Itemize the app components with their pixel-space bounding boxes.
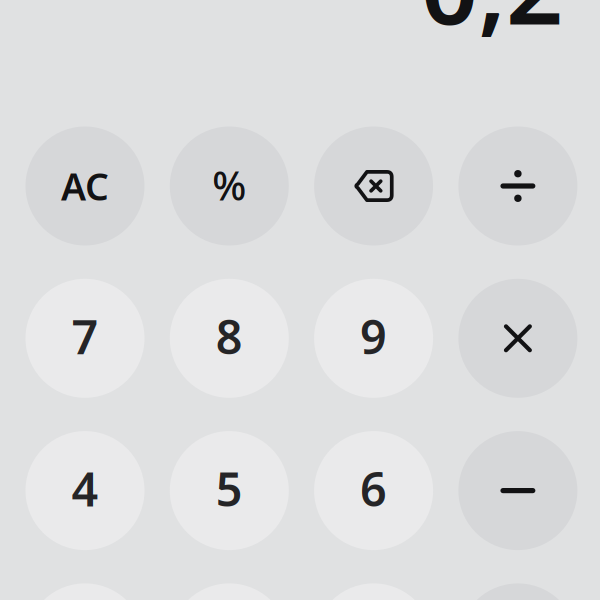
button[interactable]: Divide — [458, 126, 577, 245]
button[interactable]: Plus — [458, 583, 577, 600]
button[interactable]: 3 — [314, 583, 433, 600]
button[interactable]: Delete — [314, 126, 433, 245]
staticText: % — [212, 158, 246, 211]
button[interactable]: AC — [25, 126, 144, 245]
button[interactable]: 8 — [170, 279, 289, 398]
staticText: 7 — [71, 305, 98, 367]
button[interactable]: Minus — [458, 431, 577, 550]
button[interactable]: 4 — [25, 431, 144, 550]
staticText: 6 — [360, 457, 387, 519]
button[interactable]: 9 — [314, 279, 433, 398]
button[interactable]: 6 — [314, 431, 433, 550]
button[interactable]: 7 — [25, 279, 144, 398]
staticText: 8 — [216, 305, 243, 367]
button[interactable]: 1 — [25, 583, 144, 600]
button[interactable]: 5 — [170, 431, 289, 550]
staticText: AC — [61, 161, 109, 211]
button[interactable]: 2 — [170, 583, 289, 600]
staticText: 0,2 — [421, 0, 563, 52]
staticText: 5 — [216, 457, 243, 519]
staticText: 4 — [71, 457, 98, 519]
button[interactable]: % — [170, 126, 289, 245]
staticText: 9 — [360, 305, 387, 367]
button[interactable]: Multiply — [458, 279, 577, 398]
